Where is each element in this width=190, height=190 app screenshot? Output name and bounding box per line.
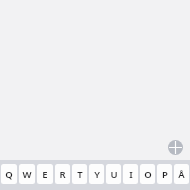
button[interactable]: T xyxy=(72,164,87,184)
staticText: W xyxy=(22,168,32,181)
button[interactable]: Y xyxy=(89,164,104,184)
staticText: E xyxy=(42,168,48,181)
button[interactable]: P xyxy=(157,164,172,184)
button[interactable]: Q xyxy=(1,164,17,184)
staticText: T xyxy=(77,168,83,181)
staticText: O xyxy=(144,168,152,181)
button[interactable]: Å xyxy=(174,164,189,184)
staticText: U xyxy=(110,168,118,181)
button[interactable]: O xyxy=(140,164,155,184)
staticText: Y xyxy=(94,168,100,181)
button[interactable]: I xyxy=(123,164,138,184)
button[interactable]: Add attachment xyxy=(168,140,183,155)
staticText: Q xyxy=(5,168,13,181)
button[interactable]: R xyxy=(55,164,70,184)
staticText: R xyxy=(59,168,66,181)
button[interactable]: W xyxy=(19,164,35,184)
staticText: Å xyxy=(178,168,185,181)
button[interactable]: Conversation xyxy=(0,0,190,160)
staticText: I xyxy=(129,168,133,181)
button[interactable]: E xyxy=(37,164,53,184)
button[interactable]: U xyxy=(106,164,121,184)
staticText: P xyxy=(162,168,168,181)
